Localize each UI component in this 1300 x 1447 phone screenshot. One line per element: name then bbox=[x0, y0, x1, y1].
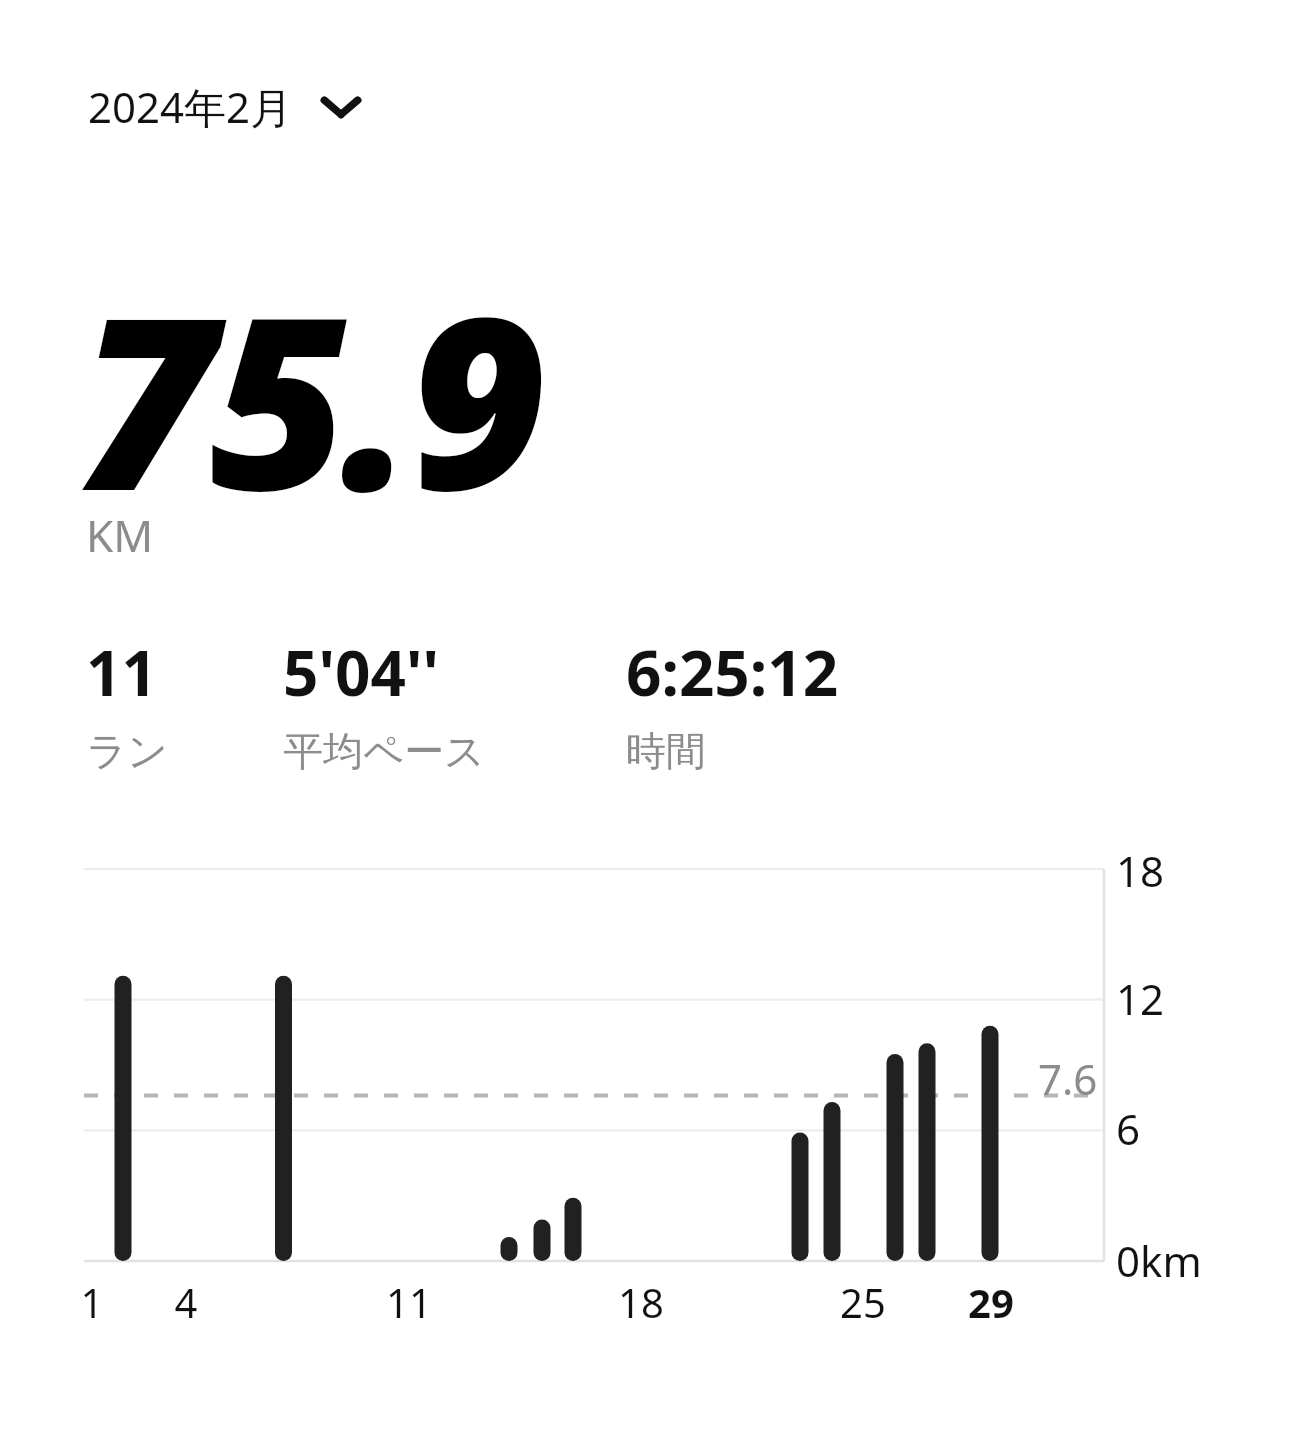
button[interactable]: 6:25:12 bbox=[626, 630, 857, 780]
button[interactable]: 11 bbox=[86, 630, 186, 780]
staticText: 0km bbox=[1116, 1232, 1202, 1289]
staticText: 18 bbox=[601, 1275, 681, 1329]
staticText: 11 bbox=[369, 1275, 449, 1329]
other: Select month bbox=[319, 90, 363, 124]
staticText: 12 bbox=[1116, 970, 1165, 1027]
button[interactable]: 18 bbox=[0, 0, 1300, 1447]
button[interactable]: 5'04'' bbox=[283, 630, 503, 780]
staticText: 時間 bbox=[626, 726, 706, 776]
staticText: 25 bbox=[823, 1275, 903, 1329]
staticText: 75.9 bbox=[78, 236, 541, 560]
staticText: ラン bbox=[86, 726, 168, 776]
staticText: 5'04'' bbox=[283, 630, 439, 714]
staticText: 平均ペース bbox=[283, 726, 485, 776]
button[interactable]: 75.9 bbox=[78, 236, 541, 560]
staticText: 2024年2月 bbox=[88, 78, 293, 135]
staticText: 6:25:12 bbox=[626, 630, 839, 714]
button[interactable]: 2024年2月 bbox=[84, 72, 367, 141]
staticText: 18 bbox=[1116, 842, 1165, 899]
staticText: 11 bbox=[86, 630, 157, 714]
staticText: 6 bbox=[1116, 1100, 1141, 1157]
staticText: 1 bbox=[52, 1275, 132, 1329]
staticText: 7.6 bbox=[1038, 1050, 1098, 1107]
staticText: KM bbox=[86, 505, 154, 565]
staticText: 29 bbox=[951, 1275, 1031, 1329]
staticText: 4 bbox=[146, 1275, 226, 1329]
